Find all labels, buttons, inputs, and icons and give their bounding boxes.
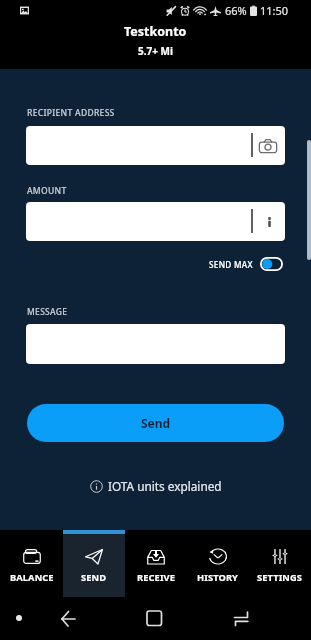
staticText: MESSAGE bbox=[27, 306, 68, 318]
staticText: Send bbox=[141, 415, 171, 431]
staticText: SEND MAX bbox=[209, 259, 253, 270]
button[interactable]: IOTA units explained bbox=[84, 476, 228, 496]
button[interactable]: Menu bbox=[16, 615, 22, 621]
staticText: HISTORY bbox=[197, 571, 239, 584]
staticText: 11:50 bbox=[260, 3, 289, 18]
staticText: 5.7+ Mi bbox=[138, 44, 173, 58]
button[interactable]: SEND bbox=[63, 530, 125, 597]
button[interactable]: Home bbox=[140, 605, 170, 635]
staticText: IOTA units explained bbox=[108, 478, 222, 494]
button[interactable]: Scan QR code bbox=[26, 126, 285, 165]
button[interactable]: SEND MAX bbox=[209, 257, 283, 271]
button[interactable]: Scan QR code bbox=[258, 136, 277, 155]
staticText: AMOUNT bbox=[27, 185, 67, 197]
staticText: RECIPIENT ADDRESS bbox=[27, 107, 115, 119]
staticText: Testkonto bbox=[124, 23, 187, 40]
button[interactable]: HISTORY bbox=[187, 530, 249, 597]
button[interactable] bbox=[26, 324, 285, 364]
staticText: RECEIVE bbox=[137, 571, 176, 584]
staticText: SEND bbox=[81, 571, 107, 584]
button[interactable]: Recent apps bbox=[227, 606, 257, 636]
button[interactable]: Send bbox=[27, 404, 284, 442]
button[interactable]: Change unit bbox=[258, 212, 277, 231]
staticText: 66% bbox=[225, 3, 247, 18]
button[interactable]: Change unit bbox=[26, 202, 285, 241]
button[interactable]: Back bbox=[47, 603, 77, 633]
button[interactable]: BALANCE bbox=[0, 530, 63, 597]
button[interactable]: RECEIVE bbox=[125, 530, 187, 597]
staticText: SETTINGS bbox=[257, 571, 303, 584]
staticText: BALANCE bbox=[10, 571, 54, 584]
button[interactable]: SETTINGS bbox=[249, 530, 311, 597]
